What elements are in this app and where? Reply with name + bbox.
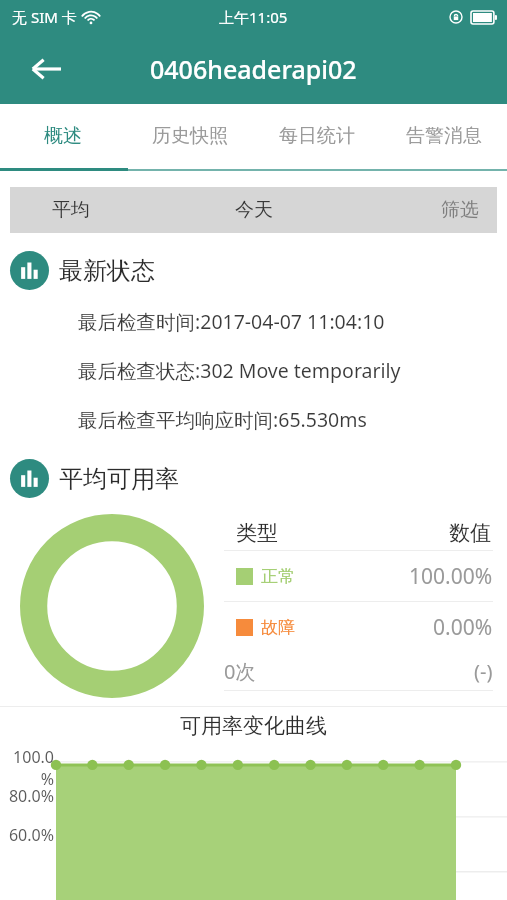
staticText: 正常 (261, 566, 409, 587)
button[interactable]: 历史快照 (126, 104, 253, 167)
button[interactable]: 故障 (224, 602, 493, 652)
staticText: 每日统计 (279, 124, 355, 148)
staticText: 今天 (235, 198, 273, 222)
button[interactable]: 概述 (0, 104, 126, 167)
button[interactable]: 告警消息 (380, 104, 507, 167)
staticText: 无 SIM 卡 (12, 7, 77, 27)
staticText: 平均可用率 (59, 464, 179, 494)
staticText: 类型 (236, 520, 449, 546)
staticText: 最后检查状态:302 Move temporarily (78, 357, 401, 384)
staticText: 最后检查时间:2017-04-07 11:04:10 (78, 308, 385, 335)
staticText: 最后检查平均响应时间:65.530ms (78, 406, 367, 433)
staticText: 告警消息 (406, 124, 482, 148)
button[interactable]: 正常 (224, 551, 493, 601)
staticText: 概述 (44, 124, 82, 148)
staticText: 0.00% (433, 613, 493, 642)
staticText: 100.00% (409, 562, 493, 591)
staticText: (-) (474, 658, 493, 685)
staticText: 历史快照 (152, 124, 228, 148)
button[interactable]: 每日统计 (253, 104, 380, 167)
staticText: 上午11:05 (219, 7, 288, 27)
staticText: 0次 (224, 658, 474, 685)
button[interactable]: 平均 (10, 187, 173, 233)
staticText: 数值 (449, 520, 491, 546)
staticText: 平均 (52, 198, 90, 222)
staticText: 100.0% (0, 746, 54, 790)
staticText: 故障 (261, 617, 433, 638)
button[interactable]: 筛选 (335, 187, 497, 233)
button[interactable]: Back (24, 47, 68, 91)
staticText: 60.0% (0, 824, 54, 846)
staticText: 筛选 (441, 198, 479, 222)
staticText: 80.0% (0, 785, 54, 807)
button[interactable]: 今天 (173, 187, 335, 233)
staticText: 0406headerapi02 (150, 52, 357, 86)
staticText: 最新状态 (59, 256, 155, 286)
staticText: 可用率变化曲线 (180, 713, 327, 739)
